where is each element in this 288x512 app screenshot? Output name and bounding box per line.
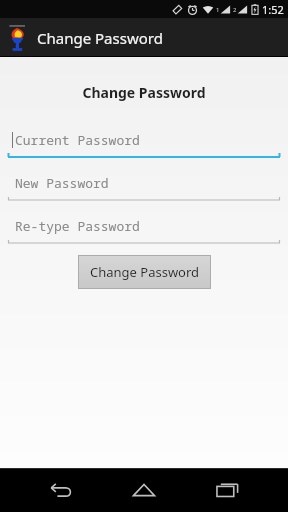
button[interactable]: Re-type Password [8, 214, 280, 244]
button[interactable]: New Password [8, 171, 280, 201]
staticText: Change Password [0, 83, 288, 102]
staticText: New Password [15, 174, 109, 192]
staticText: 1:52 [262, 2, 284, 17]
button[interactable]: Back [36, 468, 84, 512]
staticText: Change Password [37, 28, 163, 48]
staticText: Current Password [15, 131, 140, 149]
button[interactable]: Current Password [8, 128, 280, 158]
staticText: 2 [233, 6, 237, 14]
button[interactable]: Home [120, 468, 168, 512]
button[interactable]: Recents [204, 468, 252, 512]
staticText: Re-type Password [15, 217, 140, 235]
staticText: 1 [216, 6, 220, 14]
staticText: Change Password [90, 263, 200, 281]
button[interactable]: Change Password [79, 256, 210, 288]
